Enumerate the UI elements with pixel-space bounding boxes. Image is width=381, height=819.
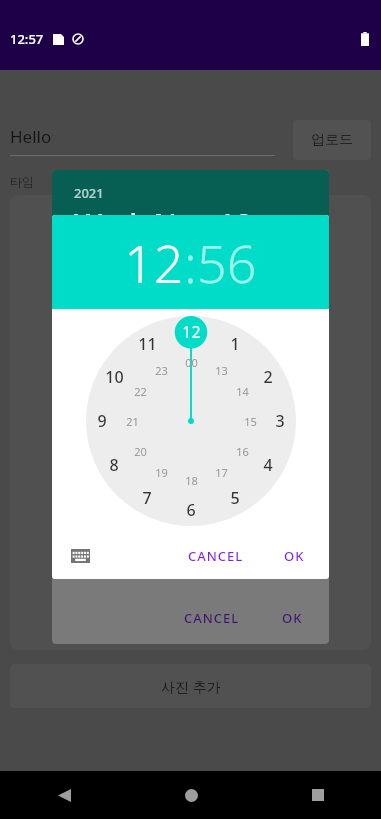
button[interactable]: Home: [167, 771, 215, 819]
staticText: 9: [97, 410, 107, 432]
button[interactable]: Hello: [10, 125, 275, 156]
button[interactable]: 12: [124, 227, 184, 298]
staticText: 타임: [10, 174, 34, 189]
button[interactable]: Switch to keyboard input: [66, 542, 94, 570]
staticText: 19: [155, 465, 168, 480]
button[interactable]: CANCEL: [180, 540, 252, 572]
button[interactable]: Recent apps: [294, 771, 342, 819]
button[interactable]: [10, 195, 371, 650]
button[interactable]: 업로드: [293, 120, 371, 160]
button[interactable]: OK: [272, 601, 313, 635]
staticText: 3: [275, 410, 285, 432]
staticText: 00: [185, 355, 198, 370]
staticText: CANCEL: [188, 547, 244, 565]
staticText: 8: [109, 454, 119, 476]
staticText: 20: [134, 444, 147, 459]
staticText: 7: [142, 487, 152, 509]
button[interactable]: OK: [276, 540, 313, 572]
staticText: 업로드: [311, 131, 353, 149]
staticText: 1: [230, 333, 240, 355]
staticText: :: [184, 227, 197, 298]
staticText: CANCEL: [184, 609, 240, 627]
staticText: Wed, Nov 10: [74, 204, 253, 245]
staticText: 15: [244, 414, 257, 429]
staticText: 6: [186, 499, 196, 521]
staticText: 12: [182, 321, 201, 343]
staticText: OK: [284, 547, 305, 565]
staticText: 13: [215, 363, 228, 378]
staticText: 사진 추가: [161, 677, 221, 696]
staticText: 18: [185, 473, 198, 488]
staticText: 2: [263, 366, 273, 388]
staticText: 12:57: [10, 30, 44, 48]
staticText: OK: [282, 609, 303, 627]
staticText: 12: [124, 227, 184, 298]
button[interactable]: 56: [197, 227, 257, 298]
staticText: Hello: [10, 125, 52, 148]
staticText: 16: [236, 444, 249, 459]
button[interactable]: Back: [40, 771, 88, 819]
button[interactable]: CANCEL: [174, 601, 250, 635]
staticText: 56: [197, 227, 257, 298]
staticText: 2021: [74, 184, 104, 202]
staticText: 17: [215, 465, 228, 480]
staticText: 5: [230, 487, 240, 509]
button[interactable]: 사진 추가: [10, 664, 371, 708]
staticText: 21: [126, 414, 139, 429]
staticText: 23: [155, 363, 168, 378]
staticText: 10: [105, 366, 124, 388]
staticText: 14: [236, 384, 249, 399]
staticText: 11: [138, 333, 157, 355]
staticText: 22: [134, 384, 147, 399]
staticText: 4: [263, 454, 273, 476]
